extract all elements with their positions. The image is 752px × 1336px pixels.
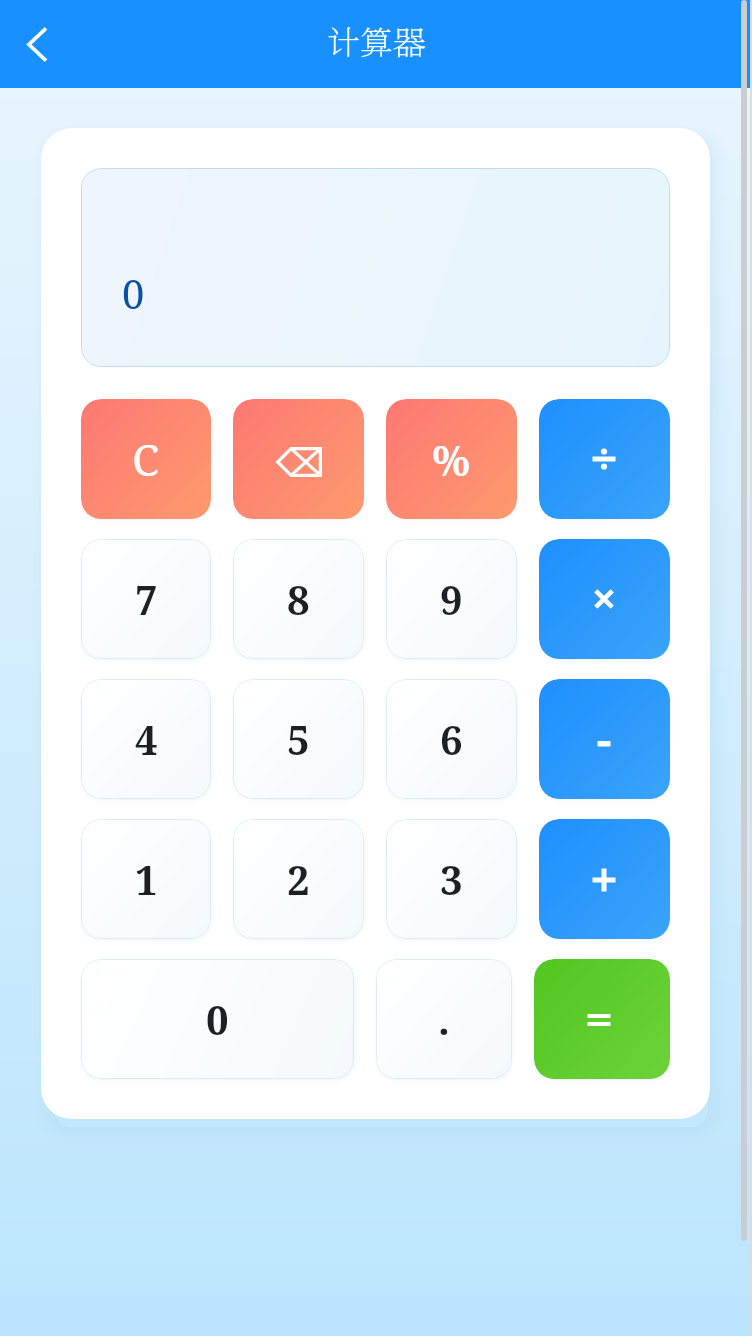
- button[interactable]: 8: [233, 539, 364, 659]
- staticText: 5: [287, 712, 310, 766]
- staticText: 6: [440, 712, 463, 766]
- staticText: %: [432, 431, 471, 488]
- button[interactable]: C: [81, 399, 211, 519]
- staticText: 2: [287, 852, 310, 906]
- button[interactable]: %: [386, 399, 517, 519]
- button[interactable]: [534, 959, 670, 1079]
- button[interactable]: [539, 399, 670, 519]
- staticText: 3: [440, 852, 463, 906]
- button[interactable]: 7: [81, 539, 211, 659]
- button[interactable]: [539, 539, 670, 659]
- button[interactable]: 3: [386, 819, 517, 939]
- button[interactable]: 6: [386, 679, 517, 799]
- button[interactable]: 4: [81, 679, 211, 799]
- button[interactable]: .: [376, 959, 512, 1079]
- button[interactable]: Backspace: [233, 399, 364, 519]
- button[interactable]: 0: [81, 959, 354, 1079]
- staticText: 计算器: [327, 17, 426, 64]
- staticText: 0: [206, 992, 229, 1046]
- button[interactable]: 9: [386, 539, 517, 659]
- button[interactable]: 1: [81, 819, 211, 939]
- staticText: 9: [440, 572, 463, 626]
- staticText: 4: [135, 712, 158, 766]
- button[interactable]: [539, 819, 670, 939]
- button[interactable]: 2: [233, 819, 364, 939]
- button[interactable]: [539, 679, 670, 799]
- staticText: 0: [122, 266, 145, 320]
- staticText: 8: [287, 572, 310, 626]
- button[interactable]: Back: [8, 15, 66, 73]
- staticText: .: [438, 992, 450, 1046]
- staticText: C: [132, 429, 160, 489]
- staticText: 7: [135, 572, 158, 626]
- staticText: 1: [135, 852, 158, 906]
- button[interactable]: 5: [233, 679, 364, 799]
